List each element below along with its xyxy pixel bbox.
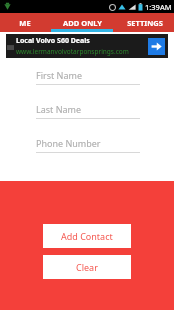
staticText: SETTINGS [127,18,163,28]
staticText: Phone Number [36,137,101,149]
button[interactable]: Phone Number [36,137,140,153]
button[interactable]: ADD ONLY [49,13,115,32]
staticText: Local Volvo S60 Deals [16,36,90,46]
button[interactable]: Clear [43,255,131,279]
staticText: First Name [36,69,82,81]
staticText: ME [19,18,31,28]
staticText: Add Contact [61,230,113,242]
button[interactable]: Open ad [148,38,165,55]
button[interactable]: ME [0,13,49,32]
staticText: Last Name [36,103,82,115]
staticText: Clear [76,261,98,273]
staticText: ADD ONLY [63,18,102,28]
button[interactable]: Local Volvo S60 Deals [6,34,168,58]
button[interactable]: Add Contact [43,224,131,248]
staticText: www.lermanvolvotarponsprings.com [16,47,129,56]
button[interactable]: SETTINGS [115,13,174,32]
staticText: 1:39AM [145,2,172,12]
button[interactable]: Last Name [36,103,140,119]
button[interactable]: First Name [36,69,140,85]
